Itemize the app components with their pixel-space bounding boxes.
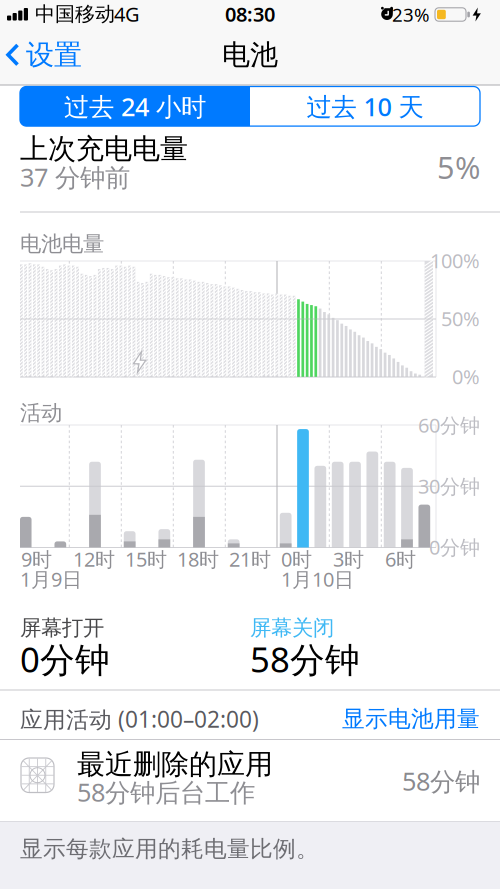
staticText: 58分钟: [402, 764, 480, 798]
button[interactable]: 过去 10 天: [250, 86, 480, 126]
staticText: 08:30: [225, 1, 275, 27]
staticText: 过去 10 天: [306, 89, 423, 123]
staticText: 上次充电电量: [20, 132, 188, 166]
staticText: 58分钟后台工作: [77, 775, 255, 809]
staticText: 屏幕打开: [20, 615, 104, 641]
staticText: 50%: [441, 305, 480, 332]
staticText: 9时: [21, 546, 52, 572]
button[interactable]: 设置: [6, 38, 82, 72]
staticText: 应用活动 (01:00–02:00): [20, 704, 259, 734]
staticText: 屏幕关闭: [250, 615, 334, 641]
staticText: 最近删除的应用: [77, 747, 273, 782]
staticText: 过去 24 小时: [64, 89, 206, 123]
staticText: 60分钟: [418, 412, 480, 438]
button[interactable]: 最近删除的应用: [0, 740, 500, 821]
staticText: 电池电量: [20, 231, 104, 257]
staticText: 100%: [430, 247, 480, 274]
staticText: 12时: [73, 546, 115, 572]
staticText: 0分钟: [20, 636, 110, 682]
staticText: 15时: [125, 546, 167, 572]
staticText: 3时: [333, 546, 364, 572]
staticText: 23%: [392, 2, 430, 27]
staticText: 18时: [177, 546, 219, 572]
staticText: 37 分钟前: [20, 160, 130, 194]
staticText: 0时: [281, 546, 312, 572]
staticText: 1月9日: [20, 566, 82, 592]
staticText: 21时: [229, 546, 271, 572]
staticText: 5%: [437, 147, 480, 187]
staticText: 1月10日: [281, 566, 354, 592]
staticText: 58分钟: [250, 636, 360, 682]
staticText: 0分钟: [429, 534, 480, 560]
staticText: 30分钟: [418, 473, 480, 499]
staticText: 0%: [452, 363, 480, 390]
button[interactable]: 显示电池用量: [280, 704, 480, 734]
staticText: 显示电池用量: [342, 705, 480, 733]
staticText: 4G: [114, 1, 140, 27]
staticText: 6时: [385, 546, 416, 572]
staticText: 显示每款应用的耗电量比例。: [20, 835, 319, 863]
staticText: 活动: [20, 400, 62, 426]
staticText: 设置: [26, 38, 82, 72]
staticText: 电池: [222, 38, 278, 72]
staticText: 中国移动: [35, 2, 115, 26]
button[interactable]: 过去 24 小时: [20, 86, 250, 126]
